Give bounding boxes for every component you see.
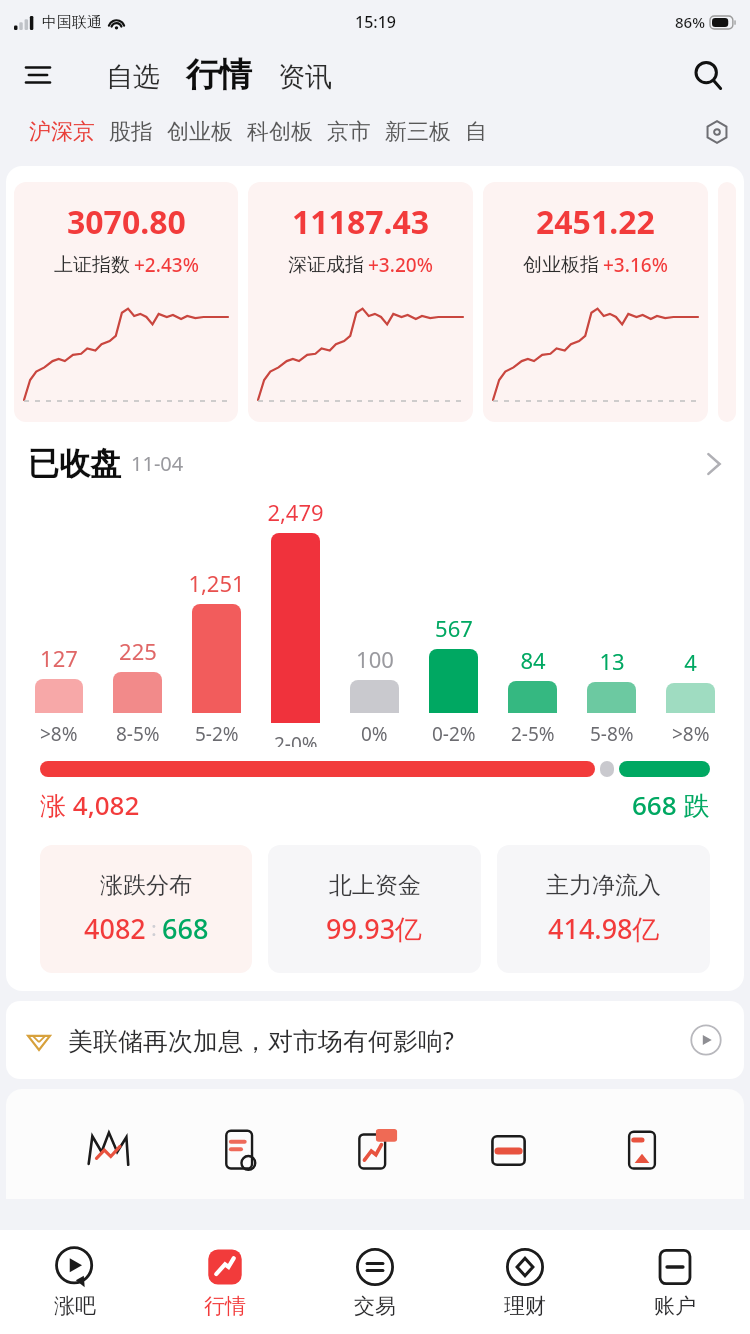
button[interactable]: Play <box>688 1022 724 1058</box>
button[interactable]: Shortcut 1 <box>209 1119 273 1183</box>
staticText: 567 <box>435 613 473 643</box>
button[interactable]: 账户 <box>600 1230 750 1334</box>
staticText: 3070.80 <box>67 200 186 244</box>
staticText: 行情 <box>204 1293 246 1319</box>
staticText: 86% <box>675 12 705 32</box>
button[interactable]: 225 <box>98 636 177 747</box>
staticText: 北上资金 <box>329 871 421 900</box>
staticText: 11187.43 <box>292 200 430 244</box>
staticText: 涨跌分布 <box>100 871 192 900</box>
staticText: 自选 <box>106 60 160 94</box>
button[interactable]: 13 <box>572 646 651 747</box>
button[interactable]: 交易 <box>300 1230 450 1334</box>
button[interactable]: Menu <box>16 53 60 97</box>
staticText: >8% <box>40 721 78 747</box>
button[interactable]: 11187.43 <box>248 182 473 422</box>
staticText: 交易 <box>354 1293 396 1319</box>
button[interactable]: Shortcut 3 <box>477 1119 541 1183</box>
staticText: 深证成指 <box>288 253 364 277</box>
staticText: 127 <box>40 643 78 673</box>
button[interactable]: 行情 <box>150 1230 300 1334</box>
button[interactable]: 84 <box>493 645 572 747</box>
button[interactable]: Shortcut 4 <box>610 1119 674 1183</box>
button[interactable]: 自选 <box>100 56 166 98</box>
button[interactable]: 沪深京 <box>22 112 102 152</box>
button[interactable]: Shortcut 0 <box>76 1119 140 1183</box>
button[interactable]: 美联储再次加息，对市场有何影响? <box>6 1001 744 1079</box>
staticText: 资讯 <box>278 60 332 94</box>
button[interactable]: 理财 <box>450 1230 600 1334</box>
staticText: 新三板 <box>385 118 451 146</box>
staticText: +2.43% <box>134 252 199 278</box>
button[interactable]: 2,479 <box>256 497 335 747</box>
staticText: 100 <box>356 644 394 674</box>
staticText: +3.16% <box>603 252 668 278</box>
button[interactable]: 自 <box>458 112 494 152</box>
button[interactable]: 567 <box>414 613 493 747</box>
staticText: 上证指数 <box>54 253 130 277</box>
staticText: 美联储再次加息，对市场有何影响? <box>68 1023 454 1057</box>
staticText: 行情 <box>186 54 252 96</box>
staticText: 5-2% <box>195 721 239 747</box>
staticText: 668 跌 <box>632 787 710 823</box>
button[interactable]: 科创板 <box>240 112 320 152</box>
button[interactable]: 涨跌分布 <box>40 845 252 973</box>
button[interactable]: 新三板 <box>378 112 458 152</box>
staticText: 414.98亿 <box>548 910 660 947</box>
button[interactable]: 已收盘 <box>6 444 744 483</box>
staticText: 2-0% <box>274 731 318 747</box>
staticText: 主力净流入 <box>546 871 661 900</box>
staticText: >8% <box>672 721 710 747</box>
staticText: 5-8% <box>590 721 634 747</box>
staticText: 中国联通 <box>42 13 102 32</box>
button[interactable]: 2451.22 <box>483 182 708 422</box>
staticText: 自 <box>465 118 487 146</box>
staticText: 11-04 <box>131 450 184 477</box>
staticText: : <box>146 915 162 942</box>
staticText: 账户 <box>654 1293 696 1319</box>
button[interactable]: 1,251 <box>177 568 256 747</box>
staticText: 8-5% <box>116 721 160 747</box>
staticText: 225 <box>119 636 157 666</box>
button[interactable]: 资讯 <box>272 56 338 98</box>
staticText: 创业板 <box>167 118 233 146</box>
staticText: 2-5% <box>511 721 555 747</box>
staticText: +3.20% <box>368 252 433 278</box>
staticText: 15:19 <box>355 11 396 33</box>
staticText: 已收盘 <box>28 444 121 483</box>
staticText: 0-2% <box>432 721 476 747</box>
button[interactable]: 北上资金 <box>268 845 481 973</box>
staticText: 99.93亿 <box>326 910 423 947</box>
button[interactable]: 行情 <box>180 52 258 98</box>
staticText: 创业板指 <box>523 253 599 277</box>
staticText: 2,479 <box>267 497 324 527</box>
staticText: 理财 <box>504 1293 546 1319</box>
staticText: 涨 4,082 <box>40 787 140 823</box>
button[interactable]: Settings <box>696 111 738 153</box>
staticText: 4082 <box>84 910 146 947</box>
button[interactable]: 股指 <box>102 112 160 152</box>
staticText: 13 <box>599 646 625 676</box>
button[interactable]: 主力净流入 <box>497 845 710 973</box>
staticText: 涨吧 <box>54 1293 96 1319</box>
staticText: 1,251 <box>188 568 245 598</box>
button[interactable]: 100 <box>335 644 414 747</box>
button[interactable]: 127 <box>20 643 98 747</box>
staticText: 4 <box>684 647 697 677</box>
button[interactable]: 创业板 <box>160 112 240 152</box>
button[interactable]: Shortcut 2 <box>343 1119 407 1183</box>
button[interactable]: Search <box>684 51 732 99</box>
button[interactable]: 4 <box>651 647 730 747</box>
button[interactable]: 3070.80 <box>14 182 238 422</box>
staticText: 0% <box>361 721 388 747</box>
staticText: 84 <box>520 645 546 675</box>
button[interactable]: 京市 <box>320 112 378 152</box>
staticText: 668 <box>162 910 209 947</box>
staticText: 2451.22 <box>536 200 655 244</box>
button[interactable]: 涨吧 <box>0 1230 150 1334</box>
staticText: 沪深京 <box>29 118 95 146</box>
staticText: 京市 <box>327 118 371 146</box>
staticText: 股指 <box>109 118 153 146</box>
staticText: 科创板 <box>247 118 313 146</box>
